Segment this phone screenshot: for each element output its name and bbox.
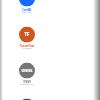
other: Model format list (0, 0, 100, 100)
staticText: TF (25, 32, 30, 38)
button[interactable]: PT (0, 99, 55, 100)
button[interactable]: TF (0, 27, 55, 51)
staticText: Windows ML (20, 82, 34, 85)
staticText: TensorFlow (20, 44, 34, 48)
staticText: Android (23, 46, 32, 49)
staticText: CoreML (22, 8, 32, 12)
staticText: iOS 15+ (23, 10, 31, 13)
button[interactable]: CM (0, 0, 55, 15)
staticText: ONNX (23, 80, 31, 84)
staticText: ONNX (21, 68, 33, 73)
button[interactable]: ONNX (0, 63, 55, 87)
